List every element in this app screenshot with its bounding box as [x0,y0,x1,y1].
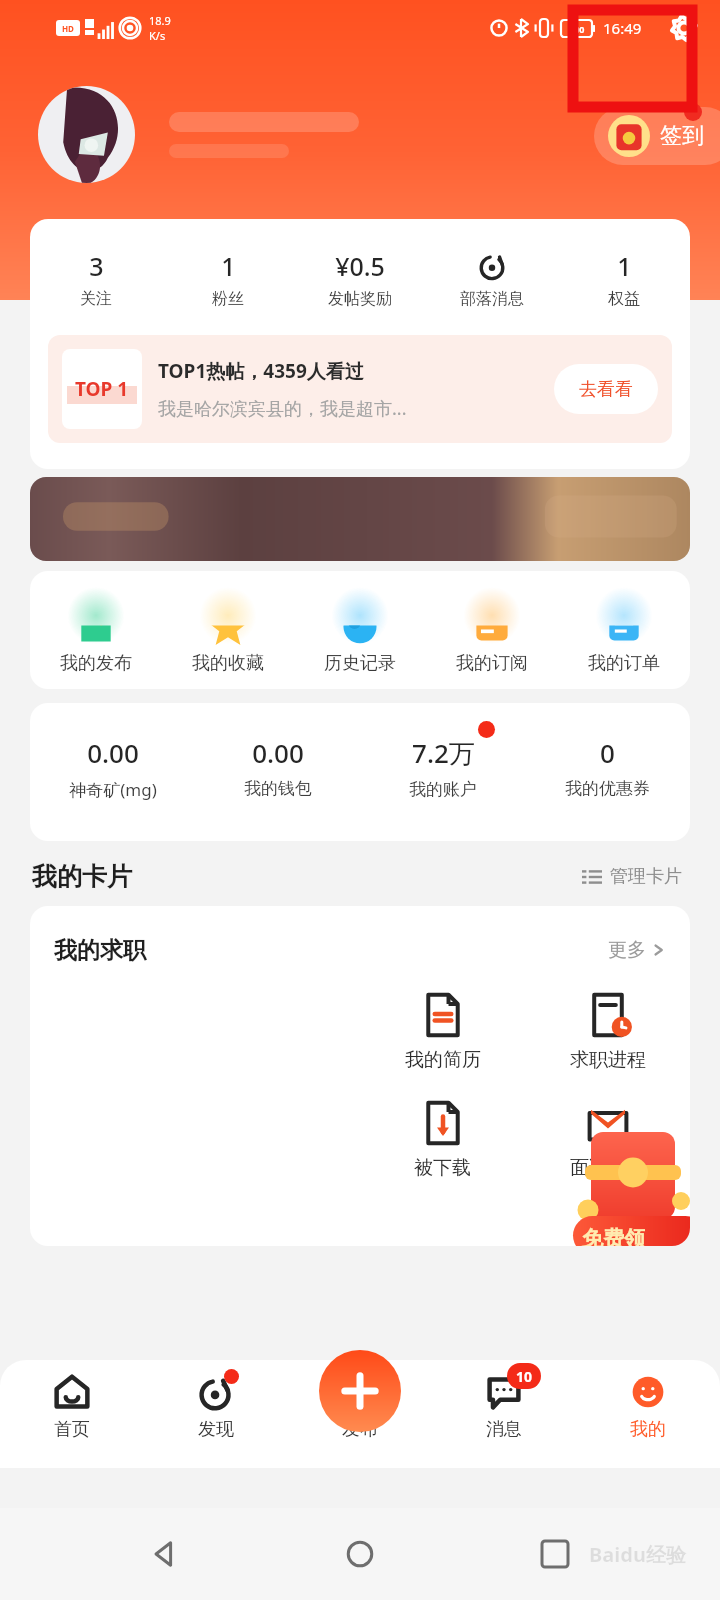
button[interactable]: Recents [525,1524,585,1584]
staticText: Baidu经验 [589,1541,686,1568]
staticText: 我的求职 [54,936,146,965]
button[interactable]: Settings [662,6,706,50]
staticText: 权益 [608,289,640,309]
staticText: 我的钱包 [244,778,312,799]
staticText: 神奇矿(mg) [69,778,157,801]
button[interactable]: 3 [30,249,162,309]
staticText: 关注 [80,289,112,309]
staticText: TOP1热帖，4359人看过 [158,358,364,384]
button[interactable]: 0.00 [195,735,360,799]
button[interactable]: 管理卡片 [576,859,688,894]
button[interactable]: 发布 [288,1368,432,1468]
button[interactable]: 被下载 [360,1100,525,1180]
button[interactable]: 求职进程 [525,992,690,1072]
staticText: 历史记录 [324,652,396,675]
button[interactable]: 0 [525,735,690,799]
staticText: 我的订单 [588,652,660,675]
staticText: 被下载 [414,1156,471,1180]
button[interactable]: Back [135,1524,195,1584]
button[interactable]: 发布 [319,1350,401,1432]
button[interactable]: 我的收藏 [162,571,294,689]
button[interactable]: 免费领 [558,1120,690,1246]
staticText: 我的账户 [409,779,477,800]
staticText: 我的发布 [60,652,132,675]
staticText: 首页 [54,1418,90,1441]
button[interactable]: ¥0.5 [294,249,426,309]
button[interactable]: 首页 [0,1368,144,1468]
staticText: 发布 [342,1418,378,1441]
staticText: 签到 [660,122,704,150]
button[interactable]: 10 [432,1368,576,1468]
button[interactable]: 去看看 [554,364,658,414]
button[interactable]: 我的订单 [558,571,690,689]
button[interactable]: 我的 [576,1368,720,1468]
button[interactable]: 签到 [594,107,720,165]
staticText: 管理卡片 [610,865,682,888]
staticText: 去看看 [579,378,633,401]
button[interactable]: 我的订阅 [426,571,558,689]
staticText: 1 [617,249,632,283]
staticText: 10 [516,1367,533,1386]
staticText: 发现 [198,1418,234,1441]
button[interactable]: 1 [162,249,294,309]
button[interactable]: 0.00 [30,735,195,801]
staticText: 更多 [608,938,646,962]
staticText: 部落消息 [460,289,524,309]
staticText: 我的订阅 [456,652,528,675]
staticText: 我的收藏 [192,652,264,675]
staticText: 我的简历 [405,1048,481,1072]
staticText: 求职进程 [570,1048,646,1072]
button[interactable]: 历史记录 [294,571,426,689]
staticText: 消息 [486,1418,522,1441]
button[interactable]: TOP 1 [48,335,672,443]
staticText: 18.9 [149,13,171,28]
staticText: 粉丝 [212,289,244,309]
button[interactable]: 更多 [604,934,670,966]
button[interactable]: 1 [558,249,690,309]
button[interactable]: Home [330,1524,390,1584]
staticText: ¥0.5 [335,249,385,283]
staticText: 面试邀请 [570,1156,646,1180]
button[interactable]: 部落消息 [426,249,558,309]
staticText: 免费领 [582,1226,645,1246]
staticText: 发帖奖励 [328,289,392,309]
staticText: 我的卡片 [32,861,132,892]
staticText: 0.00 [252,735,304,770]
staticText: K/s [149,28,166,43]
staticText: 3 [89,249,104,283]
button[interactable]: Banner [30,477,690,561]
staticText: 我的 [630,1418,666,1441]
staticText: 1 [221,249,236,283]
button[interactable]: 我的简历 [360,992,525,1072]
staticText: TOP 1 [75,376,129,402]
button[interactable]: 面试邀请 [525,1100,690,1180]
staticText: 100 [569,23,585,35]
staticText: 我是哈尔滨宾县的，我是超市... [158,396,407,421]
staticText: 0.00 [87,735,139,770]
button[interactable]: 我的发布 [30,571,162,689]
staticText: 0 [600,735,615,770]
staticText: HD [62,23,74,34]
staticText: 7.2万 [412,735,475,771]
button[interactable]: 发现 [144,1368,288,1468]
button[interactable]: 7.2万 [360,735,525,800]
staticText: 我的优惠券 [565,778,650,799]
button[interactable]: Avatar [38,86,135,183]
staticText: 16:49 [603,18,642,38]
